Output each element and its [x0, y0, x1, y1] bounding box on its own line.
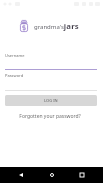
button[interactable]: Back: [11, 167, 31, 183]
staticText: grandma'sjars: [34, 21, 79, 32]
staticText: Forgotten your password?: [19, 113, 81, 120]
button[interactable]: Home: [42, 167, 62, 183]
staticText: LOG IN: [44, 98, 58, 103]
button[interactable]: Forgotten your password?: [4, 111, 96, 121]
button[interactable]: Recents: [72, 167, 92, 183]
staticText: Username: [5, 53, 25, 58]
staticText: Password: [5, 73, 24, 78]
button[interactable]: LOG IN: [5, 95, 97, 106]
